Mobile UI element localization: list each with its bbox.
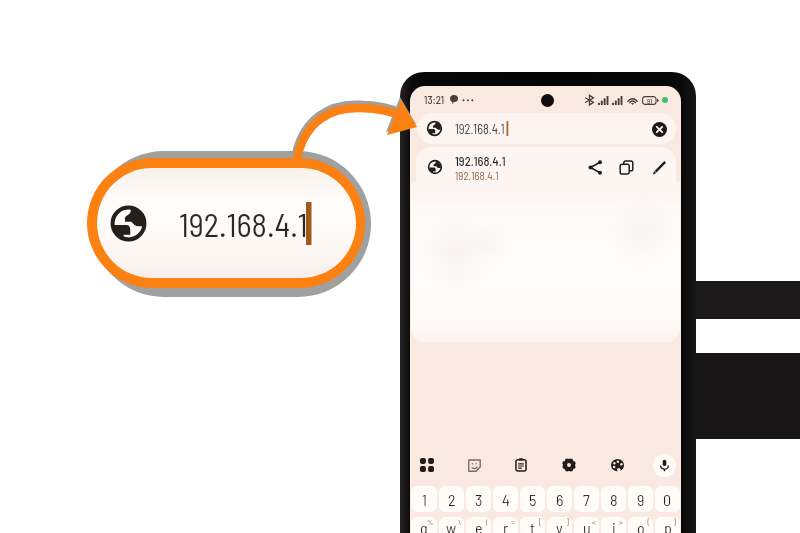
staticText: 91 [647,97,653,105]
staticText: 0 [663,490,672,509]
button[interactable]: r [493,517,518,533]
staticText: < [592,517,596,527]
staticText: 192.168.4.1 [455,169,499,182]
staticText: 192.168.4.1 [179,204,308,243]
button[interactable]: 192.168.4.1 [417,113,676,144]
button[interactable]: 2 [439,486,464,512]
button[interactable]: Clear [647,117,671,141]
button[interactable]: y [547,517,572,533]
button[interactable]: 4 [493,486,518,512]
staticText: | [486,517,488,527]
staticText: ] [566,517,569,527]
button[interactable]: 3 [466,486,491,512]
staticText: { [647,517,650,527]
staticText: i [612,518,616,533]
button[interactable]: Clipboard [509,453,533,477]
staticText: 9 [637,490,645,509]
staticText: o [637,518,645,533]
button[interactable]: t [520,517,545,533]
staticText: r [503,518,509,533]
staticText: 5 [529,490,537,509]
button[interactable]: Share [583,155,607,179]
button[interactable]: q [411,517,437,533]
button[interactable]: i [601,517,626,533]
button[interactable]: Theme [605,453,629,477]
staticText: 4 [502,490,510,509]
staticText: w [446,518,457,533]
button[interactable]: 192.168.4.1 [416,147,676,187]
button[interactable]: 0 [655,486,680,512]
staticText: 6 [556,490,564,509]
button[interactable]: o [628,517,653,533]
staticText: q [420,518,428,533]
staticText: p [664,518,672,533]
button[interactable]: 7 [574,486,599,512]
staticText: = [511,517,515,527]
staticText: u [583,518,591,533]
staticText: e [475,518,483,533]
button[interactable]: 192.168.4.1 [97,168,356,278]
button[interactable]: Settings [557,453,581,477]
button[interactable]: Copy [614,155,638,179]
button[interactable]: Apps [415,453,439,477]
button[interactable]: Voice input [653,454,676,477]
staticText: 8 [610,490,618,509]
button[interactable]: u [574,517,599,533]
staticText: 192.168.4.1 [455,121,505,136]
button[interactable]: e [466,517,491,533]
button[interactable]: 5 [520,486,545,512]
staticText: 1 [422,490,427,509]
button[interactable]: 6 [547,486,572,512]
staticText: y [556,518,563,533]
button[interactable]: 8 [601,486,626,512]
staticText: 192.168.4.1 [455,153,506,168]
staticText: } [674,517,677,527]
staticText: 13:21 [424,93,445,106]
staticText: % [427,517,434,527]
button[interactable]: w [439,517,464,533]
staticText: > [619,517,623,527]
button[interactable]: 1 [411,486,437,512]
button[interactable]: 9 [628,486,653,512]
button[interactable]: Edit [647,155,671,179]
staticText: [ [539,517,542,527]
button[interactable]: Stickers [462,453,486,477]
button[interactable]: p [655,517,680,533]
staticText: t [530,518,536,533]
staticText: \ [458,517,461,527]
staticText: 2 [448,490,456,509]
staticText: 7 [583,490,590,509]
staticText: 3 [475,490,483,509]
